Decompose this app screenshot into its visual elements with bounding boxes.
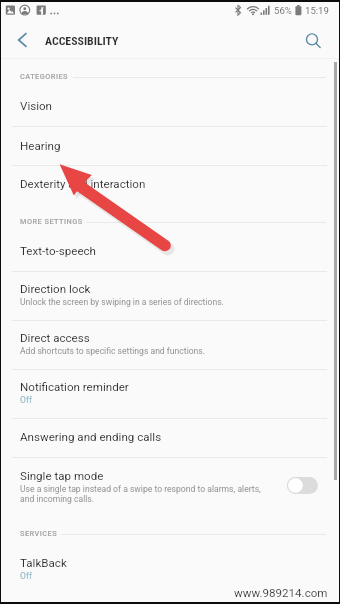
button[interactable]: Single tap mode <box>0 457 340 516</box>
staticText: Direction lock <box>20 282 91 296</box>
staticText: www.989214.com <box>234 586 328 600</box>
button[interactable]: Navigate up <box>4 21 41 58</box>
button[interactable]: Text-to-speech <box>0 233 340 271</box>
staticText: and incoming calls. <box>20 494 95 504</box>
staticText: 56% <box>274 5 292 16</box>
staticText: Dexterity and interaction <box>20 177 146 191</box>
staticText: TalkBack <box>20 556 67 570</box>
staticText: Add shortcuts to specific settings and f… <box>20 346 206 356</box>
staticText: Off <box>20 571 32 581</box>
staticText: Unlock the screen by swiping in a series… <box>20 297 224 307</box>
staticText: Hearing <box>20 139 61 153</box>
staticText: Vision <box>20 99 53 113</box>
staticText: Direct access <box>20 331 90 345</box>
staticText: Use a single tap instead of a swipe to r… <box>20 484 261 494</box>
staticText: ACCESSIBILITY <box>45 34 119 48</box>
button[interactable]: Hearing <box>0 126 340 165</box>
staticText: MORE SETTINGS <box>20 217 83 226</box>
button[interactable]: TalkBack <box>0 546 340 597</box>
button[interactable]: Vision <box>0 88 340 126</box>
staticText: 15:19 <box>305 5 329 16</box>
button[interactable]: Direction lock <box>0 271 340 320</box>
staticText: Answering and ending calls <box>20 430 162 444</box>
staticText: Text-to-speech <box>20 244 96 258</box>
button[interactable]: Search <box>294 22 331 59</box>
staticText: Off <box>20 395 32 405</box>
button[interactable]: Direct access <box>0 320 340 369</box>
staticText: Single tap mode <box>20 469 104 483</box>
staticText: Notification reminder <box>20 380 129 394</box>
button[interactable]: Dexterity and interaction <box>0 165 340 204</box>
staticText: CATEGORIES <box>20 72 68 81</box>
staticText: SERVICES <box>20 529 58 538</box>
button[interactable]: Notification reminder <box>0 369 340 418</box>
button[interactable]: Answering and ending calls <box>0 418 340 457</box>
